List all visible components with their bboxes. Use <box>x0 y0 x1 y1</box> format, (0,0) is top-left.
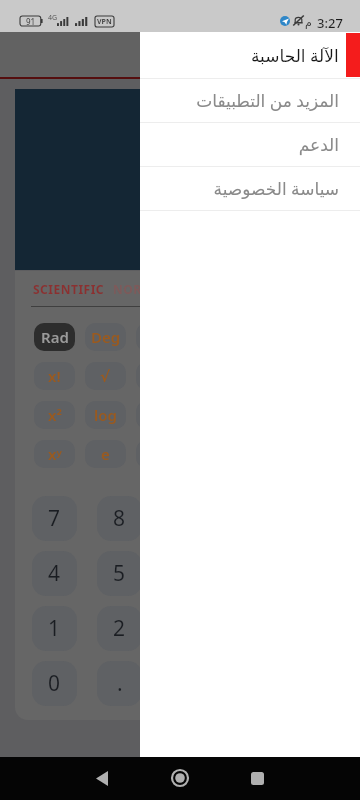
button[interactable]: tan <box>136 401 177 429</box>
staticText: SCIENTIFIC <box>33 281 105 297</box>
button[interactable]: Home <box>160 758 200 798</box>
button[interactable]: 0 <box>32 661 77 706</box>
staticText: Rad <box>41 327 69 347</box>
button[interactable]: x! <box>34 362 75 390</box>
staticText: x! <box>48 366 61 386</box>
staticText: √ <box>100 368 111 385</box>
staticText: 7 <box>48 504 61 533</box>
button[interactable]: π <box>136 440 177 468</box>
button[interactable]: . <box>97 661 142 706</box>
button[interactable]: xʸ <box>34 440 75 468</box>
staticText: VPN <box>97 17 112 27</box>
staticText: سياسة الخصوصية <box>213 177 339 200</box>
button[interactable]: الآلة الحاسبة <box>140 32 360 78</box>
button[interactable]: 8 <box>97 496 142 541</box>
staticText: 4G <box>48 13 58 23</box>
staticText: 1 <box>48 614 61 643</box>
button[interactable]: Back <box>82 758 122 798</box>
staticText: المزيد من التطبيقات <box>196 89 339 112</box>
button[interactable]: المزيد من التطبيقات <box>140 79 360 123</box>
staticText: 5 <box>113 559 126 588</box>
staticText: 3:27 <box>317 14 343 32</box>
staticText: log <box>94 405 117 425</box>
button[interactable]: الدعم <box>140 123 360 167</box>
staticText: xʸ <box>48 444 62 464</box>
staticText: x² <box>48 405 62 425</box>
button[interactable]: Deg <box>85 323 126 351</box>
button[interactable]: sin <box>136 323 177 351</box>
button[interactable]: Recent apps <box>237 758 277 798</box>
staticText: الدعم <box>298 135 339 155</box>
button[interactable]: 4 <box>32 551 77 596</box>
button[interactable]: x² <box>34 401 75 429</box>
button[interactable]: √ <box>85 362 126 390</box>
button[interactable]: 2 <box>97 606 142 651</box>
staticText: 4 <box>48 559 61 588</box>
staticText: م <box>305 16 312 29</box>
button[interactable]: log <box>85 401 126 429</box>
button[interactable]: 7 <box>32 496 77 541</box>
staticText: NORMAL <box>113 281 170 297</box>
staticText: 0 <box>48 669 61 698</box>
staticText: e <box>101 444 110 464</box>
button[interactable]: سياسة الخصوصية <box>140 167 360 211</box>
staticText: 91 <box>26 16 36 26</box>
button[interactable]: 5 <box>97 551 142 596</box>
staticText: . <box>117 669 123 698</box>
staticText: الآلة الحاسبة <box>251 44 339 67</box>
button[interactable]: 1 <box>32 606 77 651</box>
staticText: Deg <box>91 327 121 347</box>
staticText: 8 <box>113 504 126 533</box>
button[interactable]: cos <box>136 362 177 390</box>
button[interactable]: e <box>85 440 126 468</box>
staticText: 2 <box>113 614 126 643</box>
button[interactable]: Rad <box>34 323 75 351</box>
